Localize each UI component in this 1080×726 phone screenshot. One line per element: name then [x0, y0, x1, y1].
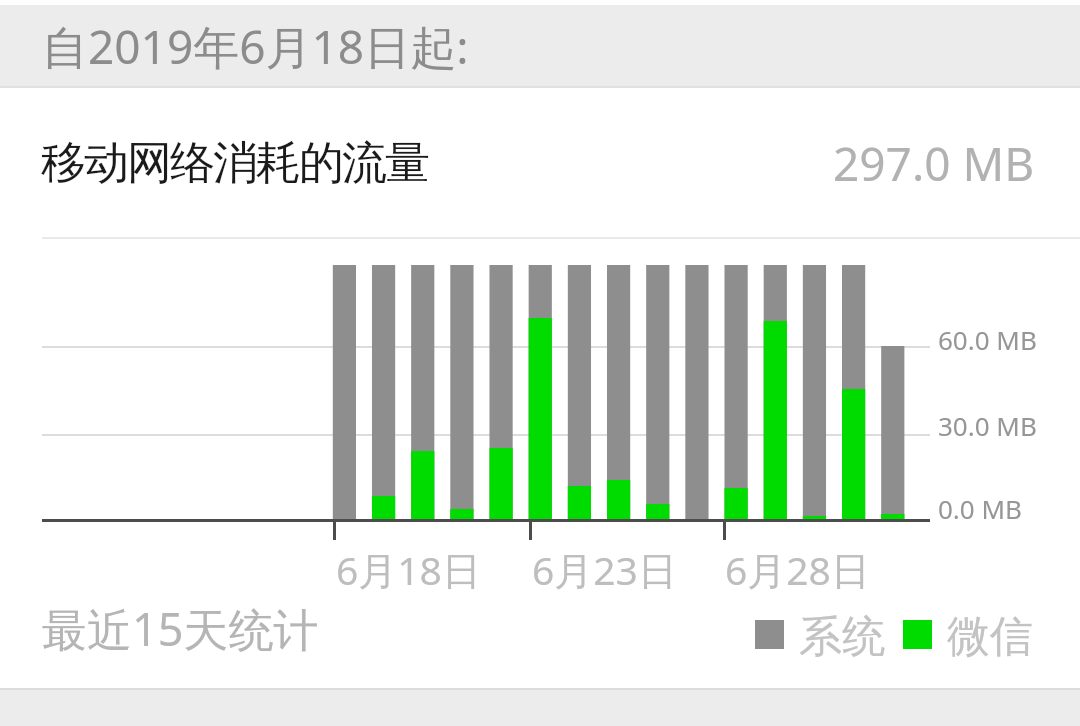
staticText: 0.0 MB — [938, 491, 1022, 526]
staticText: 最近15天统计 — [42, 598, 319, 653]
staticText: 微信 — [947, 610, 1033, 664]
staticText: 6月23日 — [532, 543, 677, 593]
staticText: 297.0 MB — [833, 132, 1035, 195]
staticText: 6月28日 — [725, 543, 870, 593]
staticText: 移动网络消耗的流量 — [42, 135, 429, 192]
staticText: 自2019年6月18日起: — [42, 15, 469, 78]
staticText: 30.0 MB — [938, 408, 1037, 443]
staticText: 6月18日 — [336, 543, 481, 593]
staticText: 60.0 MB — [938, 322, 1037, 357]
staticText: 系统 — [799, 610, 885, 664]
